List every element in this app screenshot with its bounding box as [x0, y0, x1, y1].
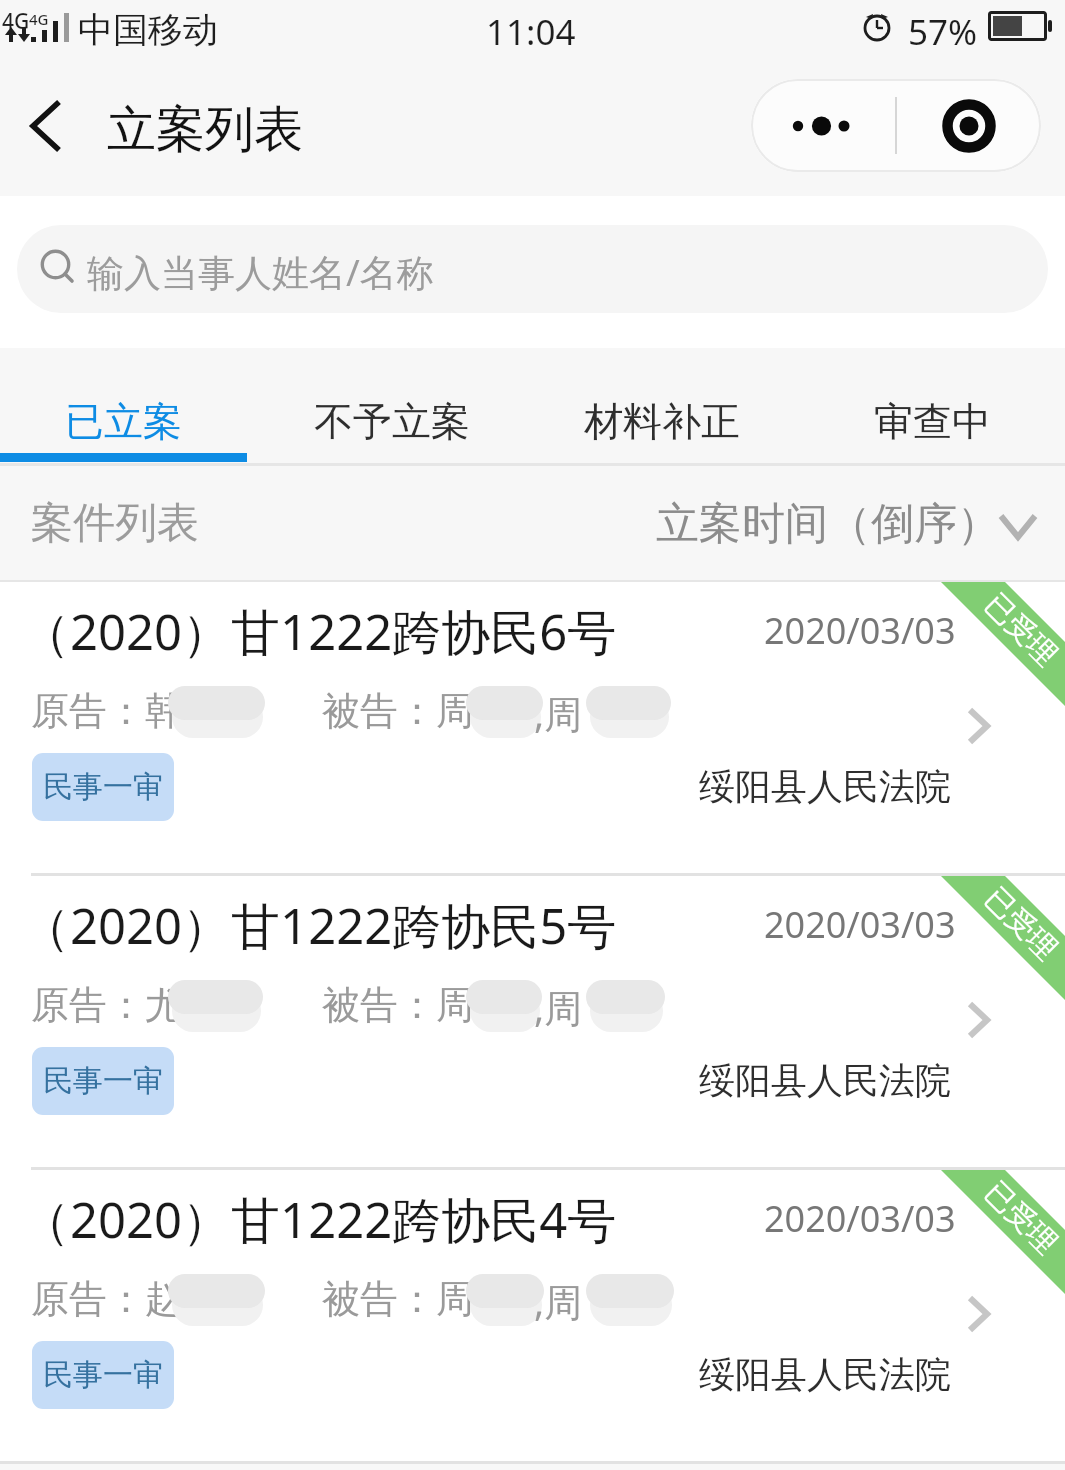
staticText: 4G	[29, 9, 49, 29]
staticText: 民事一审	[43, 768, 163, 806]
staticText: 原告：赵	[31, 1275, 183, 1323]
staticText: 绥阳县人民法院	[699, 1352, 951, 1397]
staticText: 已受理	[977, 880, 1065, 968]
button[interactable]: 审查中	[799, 348, 1065, 458]
button[interactable]: 已立案	[0, 348, 256, 458]
staticText: 被告：周	[322, 1275, 474, 1323]
staticText: 原告：尤	[31, 981, 183, 1029]
staticText: 中国移动	[78, 8, 218, 52]
staticText: 绥阳县人民法院	[699, 1058, 951, 1103]
staticText: 2020/03/03	[764, 1194, 956, 1243]
staticText: 4G	[2, 7, 30, 36]
staticText: （2020）甘1222跨协民5号	[21, 892, 617, 959]
staticText: 2020/03/03	[764, 606, 956, 655]
button[interactable]: Close mini program	[896, 79, 1041, 172]
staticText: 绥阳县人民法院	[699, 764, 951, 809]
staticText: 已受理	[977, 1174, 1065, 1262]
button[interactable]: 材料补正	[529, 348, 795, 458]
staticText: 审查中	[874, 397, 991, 446]
button[interactable]: 民事一审	[32, 1341, 174, 1409]
staticText: 民事一审	[43, 1062, 163, 1100]
staticText: 案件列表	[31, 497, 199, 550]
button[interactable]: 民事一审	[32, 753, 174, 821]
staticText: 57%	[908, 8, 978, 56]
button[interactable]: 民事一审	[32, 1047, 174, 1115]
staticText: 已受理	[977, 586, 1065, 674]
button[interactable]: 已受理	[0, 582, 1065, 876]
staticText: 已立案	[65, 397, 182, 446]
staticText: 立案时间（倒序）	[656, 497, 1000, 551]
staticText: 被告：周	[322, 981, 474, 1029]
staticText: 不予立案	[314, 397, 470, 446]
staticText: 民事一审	[43, 1356, 163, 1394]
button[interactable]: More options	[751, 79, 896, 172]
staticText: （2020）甘1222跨协民6号	[21, 598, 617, 665]
button[interactable]: 输入当事人姓名/名称	[17, 225, 1048, 313]
button[interactable]: 不予立案	[259, 348, 525, 458]
staticText: 材料补正	[584, 397, 740, 446]
staticText: ,周	[534, 687, 583, 739]
button[interactable]: 已受理	[0, 876, 1065, 1170]
staticText: ,周	[534, 981, 583, 1033]
staticText: 11:04	[486, 8, 576, 56]
button[interactable]: Back	[8, 86, 84, 166]
staticText: 被告：周	[322, 687, 474, 735]
button[interactable]: 已受理	[0, 1170, 1065, 1464]
staticText: 立案列表	[107, 99, 303, 161]
staticText: 2020/03/03	[764, 900, 956, 949]
button[interactable]: 立案时间（倒序）	[656, 497, 1044, 551]
staticText: ,周	[534, 1275, 583, 1327]
staticText: 原告：韩	[31, 687, 183, 735]
staticText: 输入当事人姓名/名称	[87, 246, 434, 297]
staticText: （2020）甘1222跨协民4号	[21, 1186, 617, 1253]
